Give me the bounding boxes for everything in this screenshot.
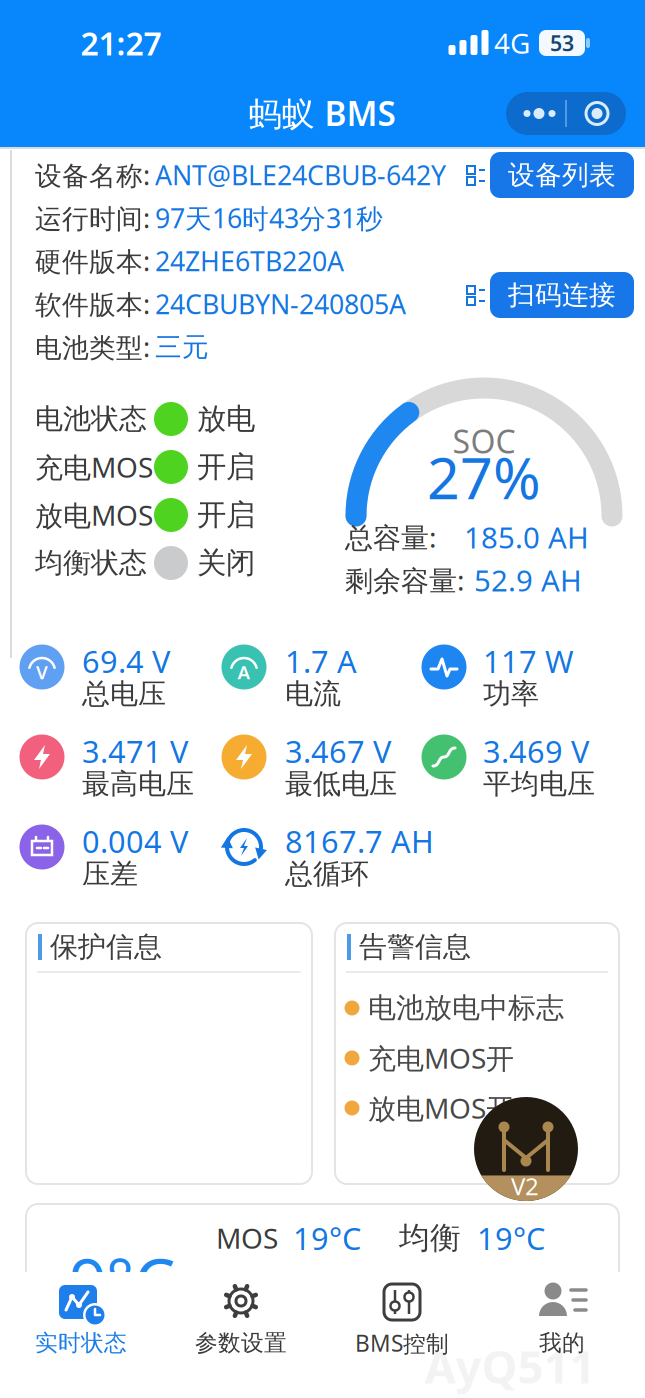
staticText: 实时状态: [35, 1329, 127, 1357]
staticText: 均衡: [399, 1219, 461, 1257]
staticText: 24ZHE6TB220A: [155, 243, 344, 279]
staticText: 3.469 V: [483, 731, 589, 771]
staticText: 19°C: [477, 1218, 545, 1258]
staticText: 充电MOS开: [368, 1039, 514, 1077]
button[interactable]: 扫码连接: [490, 272, 634, 318]
staticText: 总容量:: [345, 518, 437, 556]
staticText: 均衡状态: [35, 546, 147, 580]
staticText: 开启: [197, 497, 255, 533]
staticText: 185.0 AH: [464, 517, 589, 556]
staticText: 4G: [494, 24, 530, 62]
staticText: 3.467 V: [285, 731, 391, 771]
staticText: 三元: [155, 331, 209, 363]
staticText: 117 W: [483, 641, 574, 681]
staticText: A: [237, 660, 250, 684]
staticText: 压差: [82, 857, 138, 891]
button[interactable]: 参数设置: [161, 1272, 322, 1398]
staticText: 功率: [483, 677, 539, 711]
staticText: 开启: [197, 449, 255, 485]
staticText: 3.471 V: [82, 731, 188, 771]
staticText: 充电MOS: [35, 448, 153, 486]
staticText: 电池放电中标志: [368, 991, 564, 1025]
staticText: 19°C: [293, 1218, 361, 1258]
button[interactable]: 设备列表: [490, 152, 634, 198]
staticText: 0.004 V: [82, 821, 188, 861]
staticText: 设备列表: [508, 159, 616, 191]
staticText: ANT@BLE24CBUB-642Y: [155, 157, 446, 193]
staticText: 97天16时43分31秒: [155, 200, 383, 236]
staticText: 扫码连接: [508, 279, 616, 311]
staticText: 69.4 V: [82, 641, 170, 681]
staticText: 告警信息: [359, 930, 471, 964]
button[interactable]: BMS控制: [322, 1272, 483, 1398]
staticText: 总电压: [82, 677, 166, 711]
staticText: AyQ511: [424, 1336, 595, 1396]
staticText: SOC: [452, 420, 515, 462]
staticText: 电流: [285, 677, 341, 711]
staticText: 9°C: [69, 1238, 175, 1324]
staticText: 总循环: [285, 857, 369, 891]
staticText: 电池类型:: [35, 329, 150, 365]
button[interactable]: More and Minimize: [506, 92, 626, 135]
staticText: 设备名称:: [35, 157, 150, 193]
staticText: 保护信息: [50, 930, 162, 964]
staticText: BMS控制: [355, 1328, 449, 1358]
staticText: 27%: [427, 439, 541, 515]
staticText: 电池状态: [35, 402, 147, 436]
staticText: 1.7 A: [285, 641, 357, 681]
staticText: 关闭: [197, 545, 255, 581]
button[interactable]: 我的: [482, 1272, 643, 1398]
staticText: 21:27: [80, 22, 161, 64]
staticText: 最高电压: [82, 767, 194, 801]
staticText: 参数设置: [195, 1329, 287, 1357]
staticText: 硬件版本:: [35, 243, 150, 279]
staticText: 52.9 AH: [474, 560, 582, 599]
staticText: 我的: [539, 1329, 585, 1357]
button[interactable]: 实时状态: [0, 1272, 161, 1398]
staticText: 53: [550, 29, 574, 57]
staticText: V: [36, 660, 48, 684]
staticText: 24CBUBYN-240805A: [155, 286, 406, 322]
staticText: 放电MOS开: [368, 1089, 514, 1127]
staticText: MOS: [216, 1219, 278, 1257]
staticText: 8167.7 AH: [285, 821, 434, 861]
staticText: 放电: [197, 401, 255, 437]
staticText: 剩余容量:: [345, 561, 465, 599]
staticText: 蚂蚁 BMS: [248, 91, 395, 135]
staticText: 运行时间:: [35, 200, 150, 236]
staticText: 软件版本:: [35, 286, 150, 322]
staticText: 平均电压: [483, 767, 595, 801]
staticText: 放电MOS: [35, 496, 153, 534]
staticText: 最低电压: [285, 767, 397, 801]
staticText: V2: [511, 1170, 539, 1202]
